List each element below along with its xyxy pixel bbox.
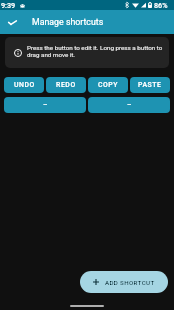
staticText: 9:39 (1, 1, 16, 9)
button[interactable]: Press the button to edit it. Long press … (5, 37, 169, 68)
button[interactable]: COPY (88, 77, 128, 93)
staticText: Manage shortcuts (32, 17, 104, 27)
staticText: – (127, 101, 132, 109)
staticText: COPY (98, 81, 119, 89)
staticText: UNDO (14, 81, 35, 89)
button[interactable]: UNDO (4, 77, 44, 93)
button[interactable]: – (4, 97, 86, 113)
staticText: REDO (56, 81, 76, 89)
button[interactable]: ADD SHORTCUT (80, 271, 168, 293)
staticText: Press the button to edit it. Long press … (27, 44, 166, 59)
staticText: 86% (154, 1, 168, 9)
button[interactable]: Done (0, 10, 24, 34)
staticText: – (43, 101, 48, 109)
staticText: PASTE (138, 81, 162, 89)
button[interactable]: PASTE (130, 77, 170, 93)
button[interactable]: REDO (46, 77, 86, 93)
staticText: ADD SHORTCUT (105, 279, 155, 286)
button[interactable]: – (88, 97, 170, 113)
